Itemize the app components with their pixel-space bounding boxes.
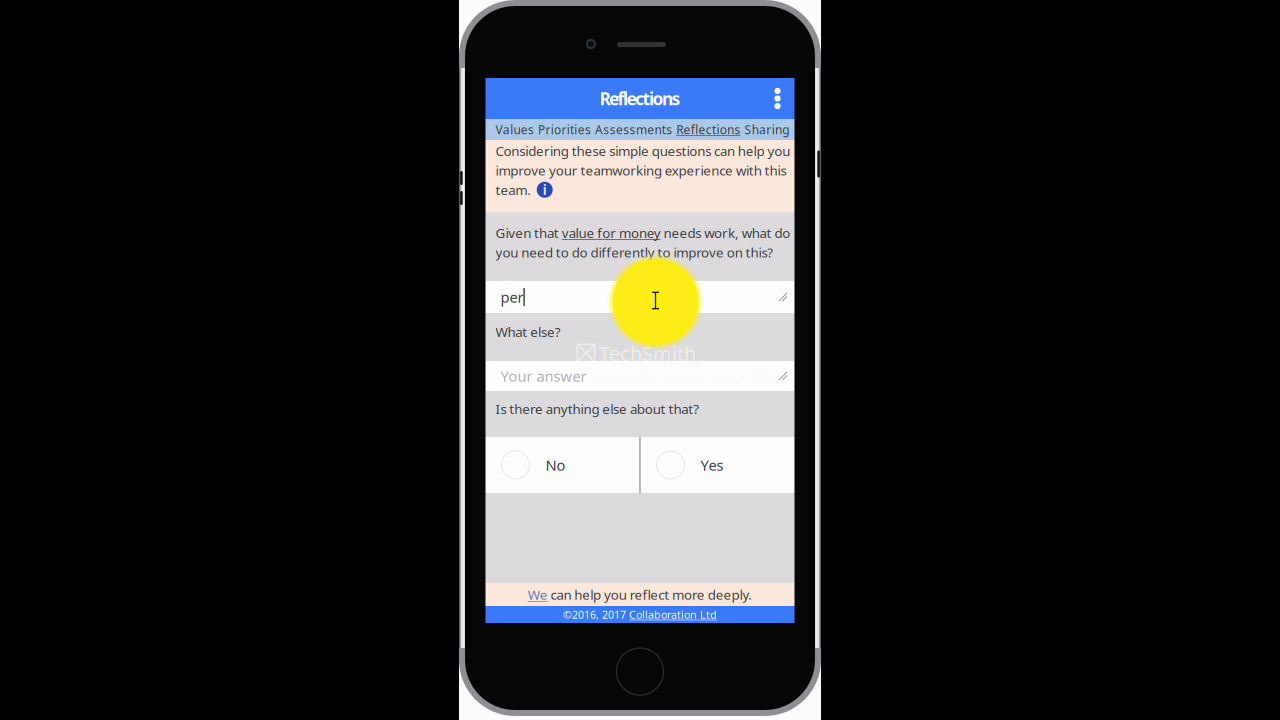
staticText: We xyxy=(528,586,548,603)
button[interactable]: Your answer xyxy=(485,361,794,391)
staticText: Collaboration Ltd xyxy=(629,607,717,622)
staticText: Is there anything else about that? xyxy=(495,400,699,418)
staticText: Sharing xyxy=(744,121,789,137)
staticText: No xyxy=(545,455,565,475)
button[interactable]: We xyxy=(528,586,548,603)
staticText: Given that value for money needs work, w… xyxy=(495,224,790,242)
button[interactable]: Yes xyxy=(640,437,794,493)
staticText: Reflections xyxy=(599,87,680,110)
staticText: Assessments xyxy=(595,121,672,137)
staticText: improve your teamworking experience with… xyxy=(495,161,786,179)
staticText: ©2016, 2017 xyxy=(563,607,629,622)
staticText: Priorities xyxy=(538,121,591,137)
staticText: team. xyxy=(495,181,531,199)
staticText: i xyxy=(543,181,547,199)
button[interactable]: Collaboration Ltd xyxy=(629,607,717,622)
staticText: you need to do differently to improve on… xyxy=(495,243,773,261)
staticText: can help you reflect more deeply. xyxy=(548,586,752,603)
button[interactable]: More options xyxy=(764,78,790,119)
button[interactable]: Priorities xyxy=(538,121,591,137)
button[interactable]: Assessments xyxy=(595,121,672,137)
button[interactable]: More information xyxy=(537,182,553,198)
staticText: TechSmith xyxy=(598,340,695,367)
button[interactable]: Values xyxy=(495,121,534,137)
staticText: per xyxy=(500,287,523,307)
staticText: Reflections xyxy=(676,121,740,137)
staticText: Values xyxy=(495,121,534,137)
button[interactable]: No xyxy=(485,437,639,493)
button[interactable]: Sharing xyxy=(744,121,789,137)
staticText: What else? xyxy=(495,323,561,341)
button[interactable]: Reflections xyxy=(676,121,740,137)
staticText: Your answer xyxy=(500,366,586,386)
button[interactable]: per xyxy=(485,281,794,313)
staticText: Yes xyxy=(700,455,723,475)
staticText: Screen capture software from TechSmith xyxy=(585,369,790,383)
staticText: Considering these simple questions can h… xyxy=(495,142,790,160)
